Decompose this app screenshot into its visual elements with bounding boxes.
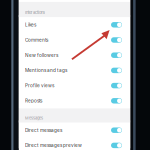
button[interactable]: Direct messages [19, 123, 130, 138]
button[interactable]: Profile views [19, 78, 130, 93]
staticText: Messages [25, 116, 43, 120]
staticText: Interactions [25, 10, 45, 15]
staticText: Profile views [25, 83, 54, 88]
staticText: Reposts [25, 98, 42, 104]
staticText: Comments [25, 37, 48, 43]
staticText: Direct messages [25, 127, 62, 133]
staticText: New followers [25, 52, 58, 58]
button[interactable]: Comments [19, 32, 130, 48]
button[interactable]: New followers [19, 48, 130, 63]
staticText: Likes [25, 22, 36, 28]
button[interactable]: Mentions and tags [19, 63, 130, 78]
button[interactable]: Likes [19, 17, 130, 32]
button[interactable]: Direct messages preview [19, 138, 130, 150]
staticText: Mentions and tags [25, 68, 67, 73]
button[interactable]: Reposts [19, 93, 130, 108]
staticText: Direct messages preview [25, 143, 82, 148]
